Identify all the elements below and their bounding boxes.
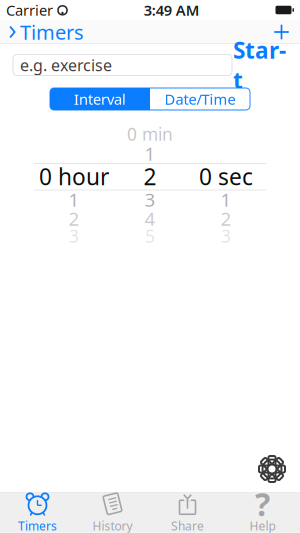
- staticText: Carrier: [6, 0, 53, 20]
- staticText: 0 hour: [39, 161, 109, 191]
- button[interactable]: Date/Time: [150, 88, 250, 110]
- staticText: 2: [220, 206, 231, 231]
- button[interactable]: Settings: [255, 452, 289, 486]
- button[interactable]: Timers: [0, 493, 75, 533]
- staticText: 3: [221, 224, 231, 247]
- staticText: Interval: [74, 89, 126, 109]
- staticText: 2: [68, 206, 79, 231]
- staticText: Timers: [18, 518, 57, 533]
- button[interactable]: e.g. exercise: [13, 54, 232, 75]
- button[interactable]: Timers: [0, 17, 90, 47]
- staticText: ?: [255, 482, 270, 525]
- button[interactable]: Start: [232, 53, 287, 77]
- staticText: 0 sec: [199, 161, 253, 191]
- staticText: 1: [144, 141, 155, 166]
- staticText: 1: [68, 187, 79, 212]
- staticText: 3:49 AM: [144, 0, 200, 20]
- button[interactable]: History: [75, 493, 150, 533]
- staticText: Start: [233, 35, 286, 95]
- staticText: 3: [69, 224, 79, 247]
- button[interactable]: Share: [150, 493, 225, 533]
- button[interactable]: Interval: [50, 88, 150, 110]
- staticText: Share: [171, 518, 204, 533]
- staticText: Timers: [20, 19, 84, 45]
- button[interactable]: ?: [225, 493, 300, 533]
- staticText: History: [92, 518, 132, 533]
- staticText: 2: [143, 161, 156, 191]
- staticText: 0 min: [127, 122, 173, 145]
- staticText: 3: [144, 187, 155, 212]
- staticText: Help: [249, 518, 275, 533]
- staticText: Date/Time: [164, 89, 235, 109]
- staticText: 4: [144, 206, 155, 231]
- staticText: e.g. exercise: [20, 54, 112, 76]
- button[interactable]: Add timer: [263, 17, 300, 47]
- staticText: 5: [145, 224, 155, 247]
- staticText: 1: [220, 187, 231, 212]
